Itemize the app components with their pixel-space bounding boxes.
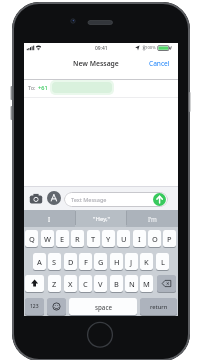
staticText: R	[75, 234, 80, 244]
staticText: To:	[28, 84, 36, 92]
staticText: W	[44, 234, 51, 244]
button[interactable]: F	[79, 253, 92, 270]
button[interactable]: Z	[48, 275, 61, 292]
staticText: I	[138, 234, 141, 244]
button[interactable]: 123	[25, 298, 44, 315]
button[interactable]	[47, 298, 66, 315]
staticText: N	[129, 279, 135, 289]
button[interactable]: I	[24, 210, 75, 227]
button[interactable]	[29, 192, 43, 205]
button[interactable]: C	[79, 275, 92, 292]
button[interactable]: space	[69, 298, 137, 315]
staticText: E	[60, 234, 65, 244]
button[interactable]: T	[87, 230, 100, 247]
button[interactable]	[47, 191, 61, 205]
button[interactable]: N	[125, 275, 138, 292]
button[interactable]: X	[64, 275, 77, 292]
staticText: T	[91, 234, 96, 244]
staticText: 100%	[145, 45, 156, 51]
staticText: A	[37, 257, 42, 267]
button[interactable]: "Hey,"	[76, 210, 127, 227]
staticText: Z	[52, 279, 57, 289]
staticText: Cancel	[149, 59, 170, 68]
button[interactable]: E	[56, 230, 69, 247]
button[interactable]	[64, 192, 168, 207]
staticText: 123	[30, 303, 39, 310]
staticText: P	[167, 234, 172, 244]
staticText: Y	[106, 234, 111, 244]
staticText: Q	[29, 234, 35, 244]
button[interactable]: G	[94, 253, 107, 270]
button[interactable]: S	[48, 253, 61, 270]
staticText: return	[150, 303, 168, 311]
button[interactable]: M	[140, 275, 153, 292]
staticText: C	[83, 279, 88, 289]
button[interactable]: return	[140, 298, 177, 315]
staticText: O	[152, 234, 158, 244]
button[interactable]: H	[110, 253, 123, 270]
staticText: S	[52, 257, 57, 267]
button[interactable]: V	[94, 275, 107, 292]
button[interactable]: K	[140, 253, 153, 270]
staticText: I’m	[148, 215, 157, 223]
button[interactable]: J	[125, 253, 138, 270]
staticText: H	[114, 257, 120, 267]
staticText: G	[98, 257, 104, 267]
button[interactable]: O	[148, 230, 161, 247]
button[interactable]	[157, 275, 176, 292]
button[interactable]: Cancel	[146, 58, 172, 69]
button[interactable]: I’m	[127, 210, 178, 227]
button[interactable]: Q	[25, 230, 38, 247]
button[interactable]	[153, 193, 166, 206]
staticText: J	[130, 257, 133, 267]
button[interactable]: I	[133, 230, 146, 247]
staticText: Text Message	[71, 196, 107, 204]
staticText: New Message	[73, 59, 119, 68]
button[interactable]: L	[156, 253, 169, 270]
staticText: L	[161, 257, 165, 267]
staticText: +61	[38, 84, 48, 92]
staticText: "Hey,"	[93, 215, 111, 223]
staticText: X	[68, 279, 73, 289]
button[interactable]: W	[41, 230, 54, 247]
button[interactable]: A	[33, 253, 46, 270]
staticText: I	[48, 215, 51, 223]
button[interactable]: Y	[102, 230, 115, 247]
staticText: 09:41	[95, 45, 108, 52]
staticText: K	[144, 257, 149, 267]
button[interactable]: U	[117, 230, 130, 247]
staticText: U	[121, 234, 127, 244]
staticText: D	[68, 257, 74, 267]
staticText: B	[114, 279, 119, 289]
staticText: space	[95, 303, 112, 311]
staticText: V	[98, 279, 103, 289]
staticText: M	[143, 279, 150, 289]
button[interactable]: D	[64, 253, 77, 270]
staticText: F	[84, 257, 88, 267]
button[interactable]: P	[163, 230, 176, 247]
button[interactable]: B	[110, 275, 123, 292]
button[interactable]: R	[71, 230, 84, 247]
button[interactable]	[25, 275, 44, 292]
